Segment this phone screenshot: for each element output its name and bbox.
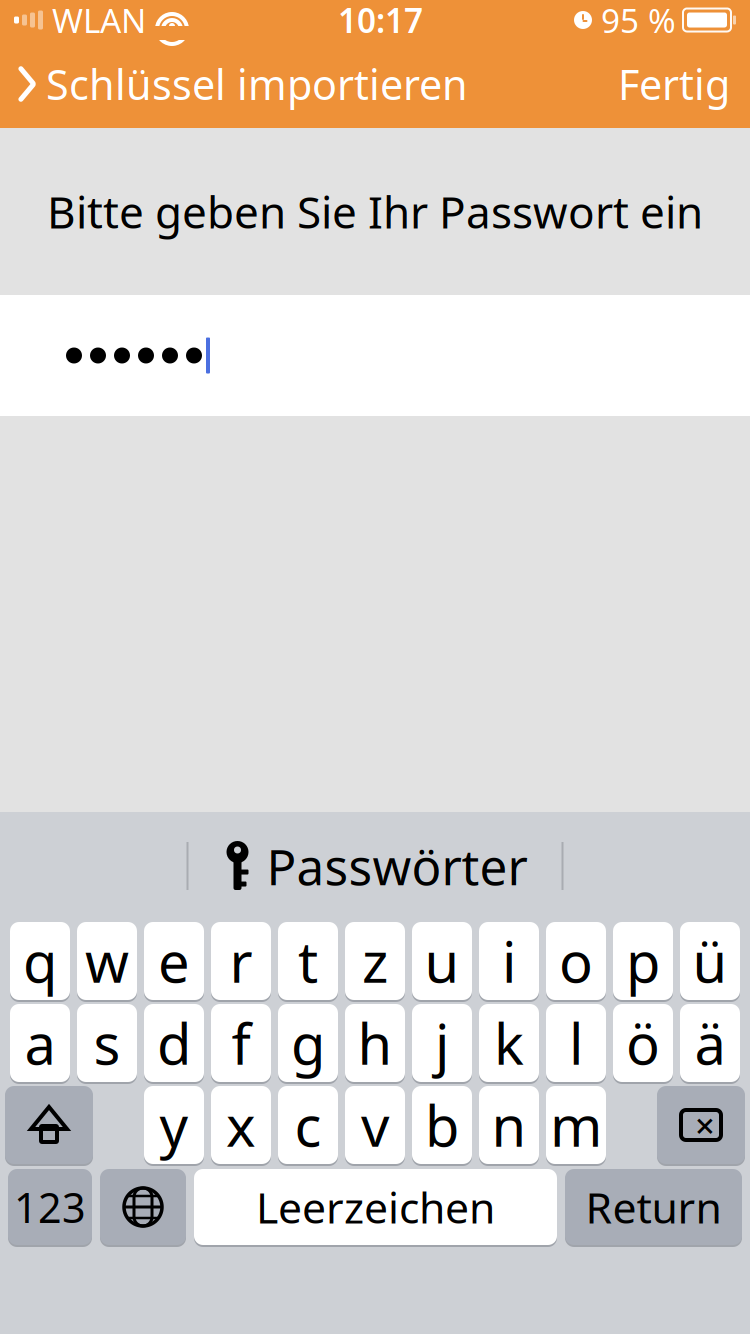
button[interactable]: ü: [680, 920, 740, 1001]
staticText: i: [502, 924, 516, 998]
staticText: n: [491, 1088, 526, 1162]
staticText: k: [494, 1006, 524, 1080]
staticText: l: [569, 1006, 583, 1080]
button[interactable]: e: [144, 920, 204, 1001]
staticText: m: [550, 1088, 602, 1162]
staticText: r: [229, 924, 252, 998]
staticText: ×: [695, 1102, 715, 1148]
staticText: d: [157, 1006, 191, 1080]
button[interactable]: k: [479, 1002, 539, 1083]
staticText: o: [559, 924, 593, 998]
button[interactable]: u: [412, 920, 472, 1001]
staticText: w: [85, 924, 129, 998]
button[interactable]: b: [412, 1084, 472, 1165]
button[interactable]: Passwörter: [198, 823, 551, 909]
staticText: WLAN: [52, 0, 146, 42]
button[interactable]: Leerzeichen: [194, 1167, 557, 1246]
staticText: y: [159, 1088, 188, 1162]
button[interactable]: c: [278, 1084, 338, 1165]
staticText: Schlüssel importieren: [46, 57, 468, 111]
staticText: Fertig: [618, 57, 730, 111]
button[interactable]: j: [412, 1002, 472, 1083]
button[interactable]: Tastatur wechseln: [100, 1167, 186, 1246]
staticText: Return: [585, 1179, 721, 1235]
button[interactable]: Fertig: [598, 49, 750, 119]
button[interactable]: Return: [565, 1167, 742, 1246]
button[interactable]: Schlüssel importieren: [0, 49, 468, 119]
button[interactable]: ä: [680, 1002, 740, 1083]
button[interactable]: l: [546, 1002, 606, 1083]
button[interactable]: n: [479, 1084, 539, 1165]
staticText: Bitte geben Sie Ihr Passwort ein: [47, 182, 703, 241]
button[interactable]: h: [345, 1002, 405, 1083]
staticText: 10:17: [338, 0, 423, 42]
staticText: e: [158, 924, 190, 998]
button[interactable]: Shift: [5, 1084, 93, 1165]
staticText: z: [362, 924, 388, 998]
button[interactable]: Löschen: [657, 1084, 745, 1165]
staticText: f: [231, 1006, 250, 1080]
button[interactable]: r: [211, 920, 271, 1001]
staticText: v: [361, 1088, 389, 1162]
button[interactable]: p: [613, 920, 673, 1001]
button[interactable]: f: [211, 1002, 271, 1083]
button[interactable]: x: [211, 1084, 271, 1165]
button[interactable]: 123: [8, 1167, 92, 1246]
button[interactable]: q: [10, 920, 70, 1001]
staticText: Passwörter: [266, 833, 527, 899]
staticText: g: [291, 1006, 325, 1080]
staticText: b: [425, 1088, 459, 1162]
staticText: p: [626, 924, 660, 998]
button[interactable]: g: [278, 1002, 338, 1083]
staticText: q: [23, 924, 57, 998]
button[interactable]: s: [77, 1002, 137, 1083]
staticText: s: [93, 1006, 120, 1080]
staticText: j: [435, 1006, 449, 1080]
staticText: Leerzeichen: [256, 1179, 495, 1235]
button[interactable]: m: [546, 1084, 606, 1165]
button[interactable]: y: [144, 1084, 204, 1165]
staticText: ü: [692, 924, 727, 998]
staticText: 123: [14, 1180, 86, 1234]
button[interactable]: a: [10, 1002, 70, 1083]
button[interactable]: z: [345, 920, 405, 1001]
staticText: ä: [694, 1006, 725, 1080]
button[interactable]: d: [144, 1002, 204, 1083]
button[interactable]: t: [278, 920, 338, 1001]
button[interactable]: w: [77, 920, 137, 1001]
staticText: u: [424, 924, 459, 998]
button[interactable]: ö: [613, 1002, 673, 1083]
staticText: h: [357, 1006, 392, 1080]
staticText: a: [24, 1006, 55, 1080]
staticText: 95 %: [601, 0, 676, 42]
staticText: c: [294, 1088, 321, 1162]
staticText: t: [298, 924, 318, 998]
staticText: x: [226, 1088, 256, 1162]
button[interactable]: i: [479, 920, 539, 1001]
button[interactable]: v: [345, 1084, 405, 1165]
staticText: ö: [626, 1006, 660, 1080]
button[interactable]: o: [546, 920, 606, 1001]
